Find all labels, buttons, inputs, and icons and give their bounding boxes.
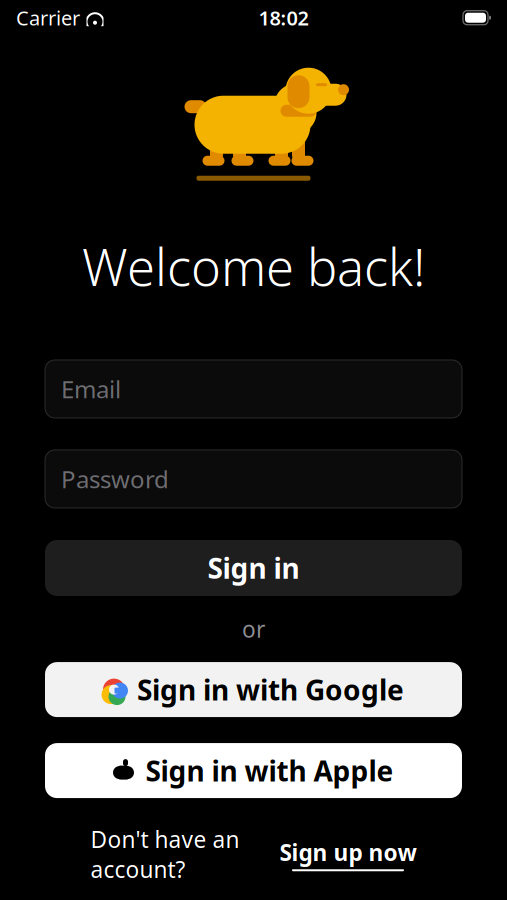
staticText: or: [242, 614, 265, 644]
staticText: Password: [61, 463, 169, 495]
staticText: Don't have an account?: [90, 824, 239, 884]
button[interactable]: Sign in with Google: [45, 662, 462, 717]
staticText: Carrier: [16, 4, 80, 31]
button[interactable]: Sign up now: [279, 837, 416, 871]
button[interactable]: Password: [45, 450, 462, 508]
staticText: Sign in: [207, 549, 299, 587]
staticText: 18:02: [258, 4, 308, 31]
button[interactable]: Email: [45, 360, 462, 418]
staticText: Sign up now: [279, 837, 416, 867]
staticText: Welcome back!: [82, 233, 425, 300]
staticText: Sign in with Google: [137, 671, 404, 708]
button[interactable]: Sign in with Apple: [45, 743, 462, 798]
staticText: Sign in with Apple: [145, 752, 393, 789]
button[interactable]: Sign in: [45, 540, 462, 596]
staticText: Email: [61, 373, 121, 405]
